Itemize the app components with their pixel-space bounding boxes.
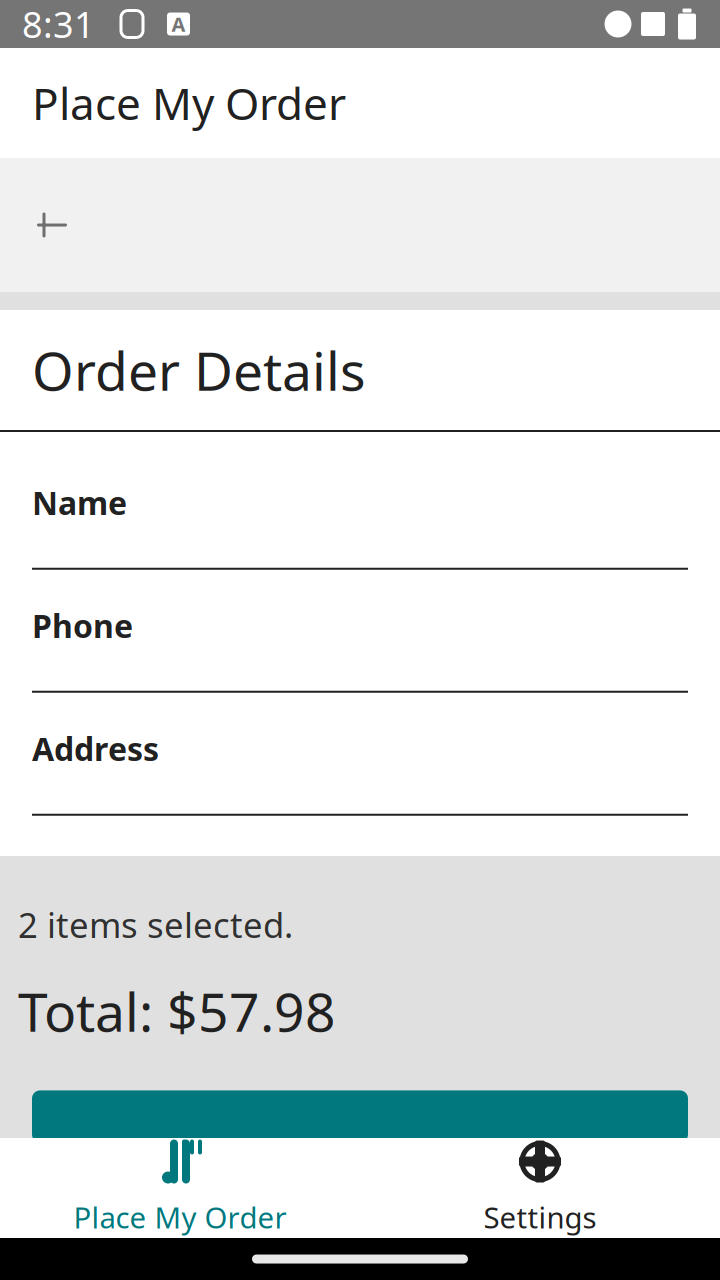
staticText: Total: $57.98 xyxy=(18,976,336,1046)
staticText: Phone xyxy=(32,604,133,647)
staticText: Settings xyxy=(483,1197,596,1236)
staticText: 8:31 xyxy=(22,0,95,48)
staticText: Place My Order xyxy=(73,1197,286,1236)
button[interactable]: Settings xyxy=(360,1138,720,1238)
staticText: Order Details xyxy=(32,335,366,405)
staticText: Place My Order xyxy=(32,74,346,132)
staticText: Name xyxy=(32,481,127,524)
button[interactable]: Back xyxy=(16,189,88,261)
staticText: A xyxy=(171,11,185,37)
button[interactable]: Place Order xyxy=(0,1090,720,1142)
staticText: 2 items selected. xyxy=(18,902,293,948)
staticText: Address xyxy=(32,727,159,770)
button[interactable]: Place My Order xyxy=(0,1138,360,1238)
